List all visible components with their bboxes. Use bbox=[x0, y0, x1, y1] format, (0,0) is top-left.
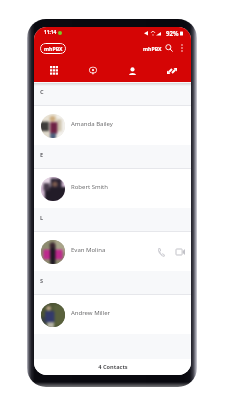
staticText: mhPBX bbox=[143, 45, 162, 52]
staticText: S bbox=[40, 277, 44, 285]
button[interactable]: Dialpad bbox=[34, 58, 74, 83]
button[interactable]: Voicemail bbox=[74, 58, 113, 83]
button[interactable]: Andrew Miller bbox=[34, 295, 191, 334]
button[interactable]: Contacts bbox=[113, 58, 152, 83]
button[interactable]: Amanda Bailey bbox=[34, 106, 191, 145]
staticText: E bbox=[40, 151, 44, 159]
staticText: 11:14 bbox=[44, 29, 57, 36]
staticText: Robert Smith bbox=[71, 183, 108, 191]
staticText: Andrew Miller bbox=[71, 309, 111, 317]
button[interactable]: mhPBX bbox=[40, 43, 66, 54]
button[interactable]: More options bbox=[176, 42, 188, 54]
button[interactable]: Evan Molina bbox=[34, 232, 191, 271]
button[interactable]: Call bbox=[152, 243, 170, 261]
button[interactable]: Robert Smith bbox=[34, 169, 191, 208]
button[interactable]: Transfer bbox=[152, 58, 191, 83]
staticText: 4 Contacts bbox=[98, 363, 128, 371]
button[interactable]: Video call bbox=[171, 243, 189, 261]
button[interactable]: 4 Contacts bbox=[34, 359, 191, 375]
staticText: L bbox=[40, 214, 44, 222]
button[interactable]: Search bbox=[163, 42, 175, 54]
staticText: Evan Molina bbox=[71, 246, 106, 254]
staticText: 92% bbox=[166, 29, 179, 37]
staticText: Amanda Bailey bbox=[71, 120, 113, 128]
staticText: C bbox=[40, 88, 44, 96]
staticText: mhPBX bbox=[44, 45, 63, 52]
